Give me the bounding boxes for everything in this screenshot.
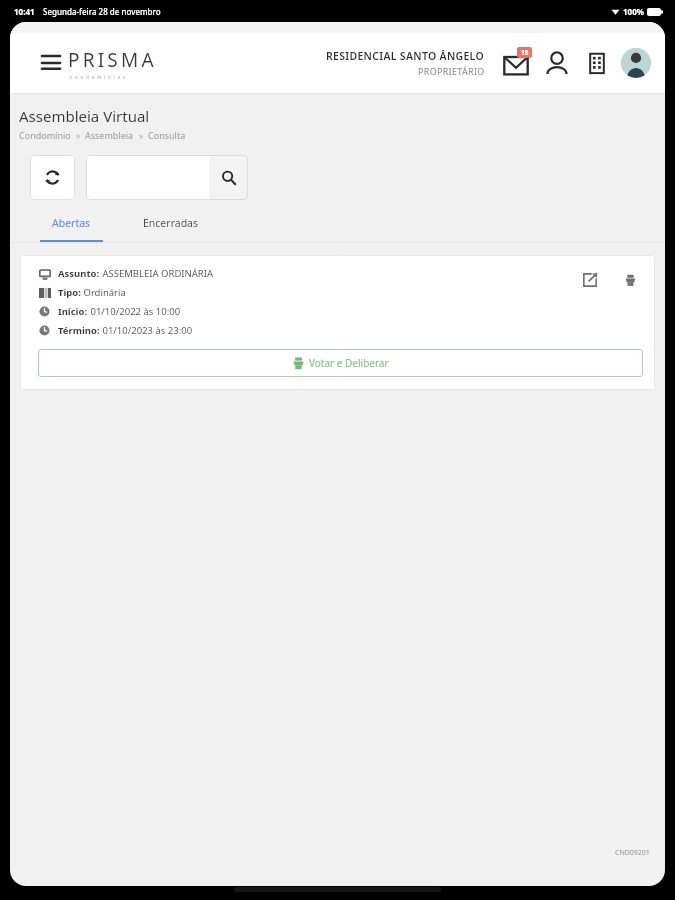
staticText: Assembleia — [85, 129, 134, 141]
button[interactable]: Mensagens — [499, 46, 533, 80]
staticText: Início: — [58, 305, 88, 318]
staticText: 01/10/2023 às 23:00 — [100, 324, 193, 337]
staticText: Tipo: — [58, 286, 81, 299]
button[interactable]: Pesquisar — [209, 155, 248, 200]
staticText: Abertas — [52, 216, 91, 230]
staticText: PRISMA — [68, 47, 157, 73]
button[interactable]: Conta do usuário — [621, 48, 651, 78]
staticText: Término: — [58, 324, 100, 337]
staticText: 01/10/2022 às 10:00 — [88, 305, 181, 318]
staticText: Ordinária — [81, 286, 126, 299]
button[interactable]: Menu — [36, 48, 66, 78]
button[interactable] — [86, 155, 209, 200]
staticText: CND09201 — [615, 848, 650, 858]
staticText: » — [134, 129, 148, 141]
button[interactable]: Atualizar — [30, 155, 75, 200]
staticText: Segunda-feira 28 de novembro — [43, 6, 161, 17]
staticText: Assembleia Virtual — [19, 106, 150, 126]
button[interactable]: Imprimir — [617, 267, 643, 293]
staticText: RESIDENCIAL SANTO ÂNGELO — [326, 49, 485, 63]
staticText: 18 — [521, 48, 529, 57]
staticText: Assunto: — [58, 267, 100, 280]
staticText: ASSEMBLEIA ORDINÁRIA — [100, 267, 214, 280]
button[interactable]: Encerradas — [135, 216, 207, 230]
staticText: » — [71, 129, 85, 141]
button[interactable]: Abertas — [32, 216, 111, 242]
button[interactable]: Votar e Deliberar — [38, 349, 643, 377]
staticText: Condomínio — [19, 129, 71, 141]
staticText: Votar e Deliberar — [309, 356, 389, 370]
staticText: 100% — [623, 6, 644, 17]
staticText: Consulta — [148, 129, 186, 141]
button[interactable]: Condomínio — [581, 47, 613, 79]
staticText: Encerradas — [143, 216, 199, 230]
staticText: c o n d o m í n i o s — [70, 74, 126, 80]
staticText: 10:41 — [14, 6, 35, 17]
staticText: PROPRIETÁRIO — [418, 65, 485, 77]
button[interactable]: Perfil — [541, 47, 573, 79]
button[interactable]: Editar — [577, 267, 603, 293]
